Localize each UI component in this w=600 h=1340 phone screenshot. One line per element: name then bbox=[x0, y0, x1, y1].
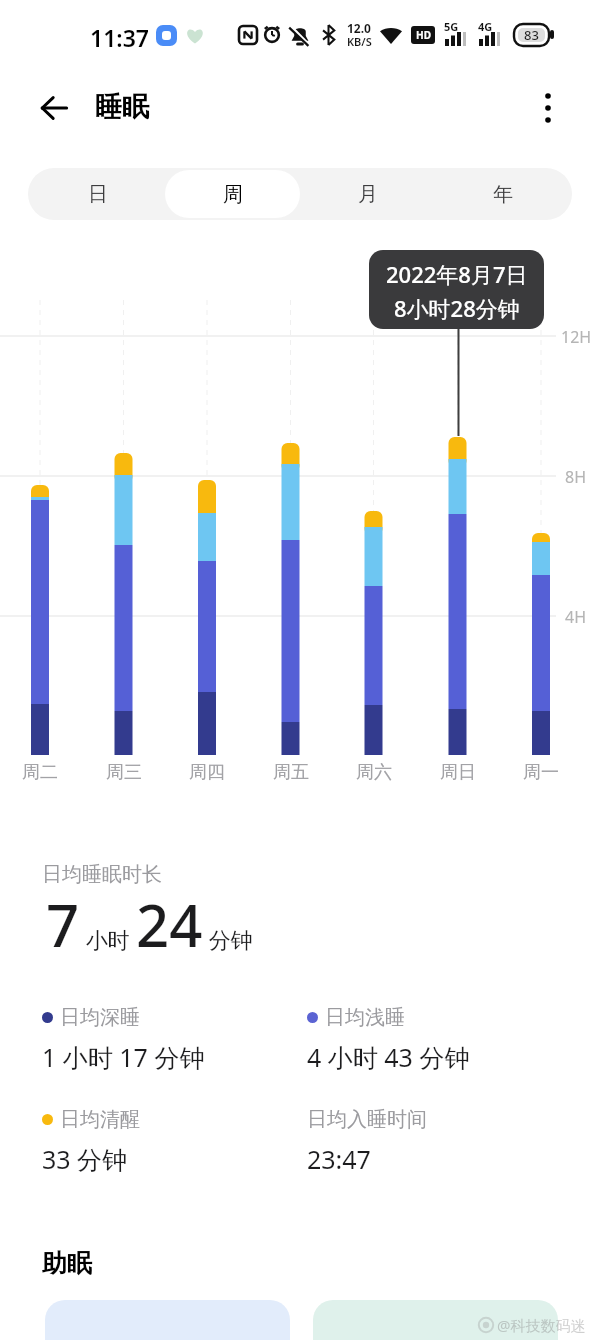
button[interactable]: 周 bbox=[165, 170, 300, 218]
staticText: 日均入睡时间 bbox=[307, 1107, 427, 1132]
button[interactable]: 月 bbox=[300, 170, 435, 218]
staticText: HD bbox=[416, 28, 431, 42]
staticText: 周三 bbox=[106, 761, 142, 784]
staticText: 83 bbox=[524, 26, 539, 44]
staticText: 24 bbox=[136, 885, 203, 964]
staticText: 12H bbox=[561, 326, 592, 348]
staticText: 8小时28分钟 bbox=[394, 293, 520, 323]
staticText: 11:37 bbox=[90, 22, 149, 53]
staticText: 周五 bbox=[273, 761, 309, 784]
staticText: 月 bbox=[358, 182, 378, 207]
button[interactable] bbox=[30, 84, 78, 132]
staticText: @科技数码迷 bbox=[497, 1315, 586, 1335]
staticText: 2022年8月7日 bbox=[386, 259, 528, 289]
staticText: 12.0 bbox=[347, 20, 371, 36]
staticText: 周二 bbox=[22, 761, 58, 784]
staticText: 助眠 bbox=[42, 1248, 92, 1279]
button[interactable]: 日 bbox=[30, 170, 165, 218]
staticText: 周六 bbox=[356, 761, 392, 784]
staticText: 周一 bbox=[523, 761, 559, 784]
staticText: 日均浅睡 bbox=[325, 1005, 405, 1030]
staticText: 日 bbox=[88, 182, 108, 207]
staticText: 日均深睡 bbox=[60, 1005, 140, 1030]
button[interactable]: 年 bbox=[435, 170, 570, 218]
staticText: 睡眠 bbox=[95, 90, 149, 124]
staticText: 分钟 bbox=[203, 924, 253, 954]
staticText: 5G bbox=[444, 19, 459, 34]
button[interactable] bbox=[524, 84, 572, 132]
staticText: 周四 bbox=[189, 761, 225, 784]
staticText: 日均清醒 bbox=[60, 1107, 140, 1132]
staticText: 4G bbox=[478, 19, 493, 34]
staticText: 8H bbox=[565, 466, 587, 488]
staticText: 4 小时 43 分钟 bbox=[307, 1040, 470, 1074]
staticText: 1 小时 17 分钟 bbox=[42, 1040, 205, 1074]
staticText: 33 分钟 bbox=[42, 1142, 128, 1176]
staticText: 23:47 bbox=[307, 1142, 371, 1176]
staticText: 周日 bbox=[440, 761, 476, 784]
button[interactable] bbox=[313, 1300, 558, 1340]
staticText: 4H bbox=[565, 606, 587, 628]
button[interactable] bbox=[45, 1300, 290, 1340]
staticText: 小时 bbox=[80, 924, 136, 954]
staticText: 日均睡眠时长 bbox=[42, 862, 162, 887]
staticText: KB/S bbox=[347, 34, 372, 49]
staticText: 年 bbox=[493, 182, 513, 207]
staticText: 周 bbox=[223, 182, 243, 207]
staticText: 7 bbox=[46, 885, 80, 964]
